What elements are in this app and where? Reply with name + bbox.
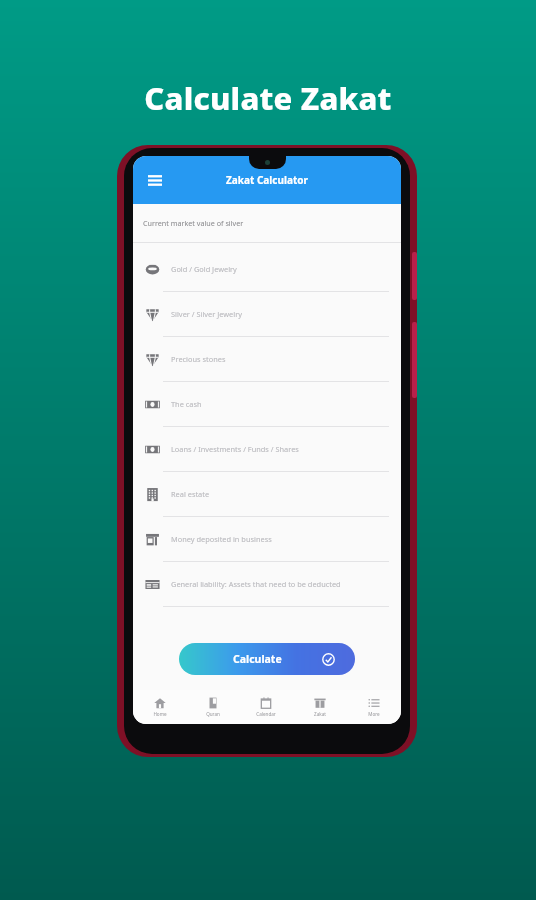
staticText: The cash bbox=[171, 399, 393, 409]
staticText: Real estate bbox=[171, 489, 393, 499]
staticText: Calendar bbox=[256, 711, 276, 717]
staticText: General liability: Assets that need to b… bbox=[171, 579, 393, 589]
staticText: Home bbox=[153, 711, 167, 717]
staticText: Zakat Calculator bbox=[133, 173, 401, 187]
staticText: Silver / Silver Jewelry bbox=[171, 309, 393, 319]
button[interactable]: Menu bbox=[139, 164, 171, 196]
button[interactable]: Zakat bbox=[293, 690, 347, 724]
button[interactable]: Calendar bbox=[239, 690, 293, 724]
staticText: Zakat bbox=[314, 711, 326, 717]
button[interactable]: The cash bbox=[133, 382, 401, 427]
staticText: Quran bbox=[206, 711, 220, 717]
button[interactable]: Gold / Gold Jewelry bbox=[133, 247, 401, 292]
button[interactable]: Current market value of silver bbox=[133, 204, 401, 242]
button[interactable]: Money deposited in business bbox=[133, 517, 401, 562]
staticText: Calculate Zakat bbox=[0, 77, 536, 119]
staticText: Money deposited in business bbox=[171, 534, 393, 544]
staticText: More bbox=[368, 711, 380, 717]
button[interactable]: Quran bbox=[186, 690, 239, 724]
staticText: Precious stones bbox=[171, 354, 393, 364]
button[interactable]: Loans / Investments / Funds / Shares bbox=[133, 427, 401, 472]
button[interactable]: General liability: Assets that need to b… bbox=[133, 562, 401, 607]
button[interactable]: Silver / Silver Jewelry bbox=[133, 292, 401, 337]
button[interactable]: Precious stones bbox=[133, 337, 401, 382]
button[interactable]: Home bbox=[133, 690, 186, 724]
staticText: Calculate bbox=[233, 652, 282, 666]
staticText: Current market value of silver bbox=[143, 218, 244, 228]
button[interactable]: Calculate bbox=[179, 643, 355, 675]
staticText: Loans / Investments / Funds / Shares bbox=[171, 444, 393, 454]
staticText: Gold / Gold Jewelry bbox=[171, 264, 393, 274]
button[interactable]: More bbox=[347, 690, 401, 724]
button[interactable]: Real estate bbox=[133, 472, 401, 517]
